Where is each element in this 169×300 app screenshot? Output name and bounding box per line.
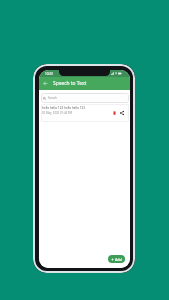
staticText: Add [115,257,122,262]
staticText: Speech to Text [53,80,87,87]
staticText: Search [48,96,58,100]
button[interactable]: Search [41,93,129,103]
button[interactable]: hello hello 123 hello hello 123 [41,104,129,122]
staticText: 10:30 [45,72,53,76]
button[interactable]: Share [119,110,125,116]
button[interactable]: Add [108,255,125,263]
staticText: hello hello 123 hello hello 123 [42,106,86,110]
staticText: 02 May, 2020 01:44 PM [42,111,73,115]
button[interactable]: Back [42,80,49,87]
button[interactable]: Delete [112,110,117,116]
